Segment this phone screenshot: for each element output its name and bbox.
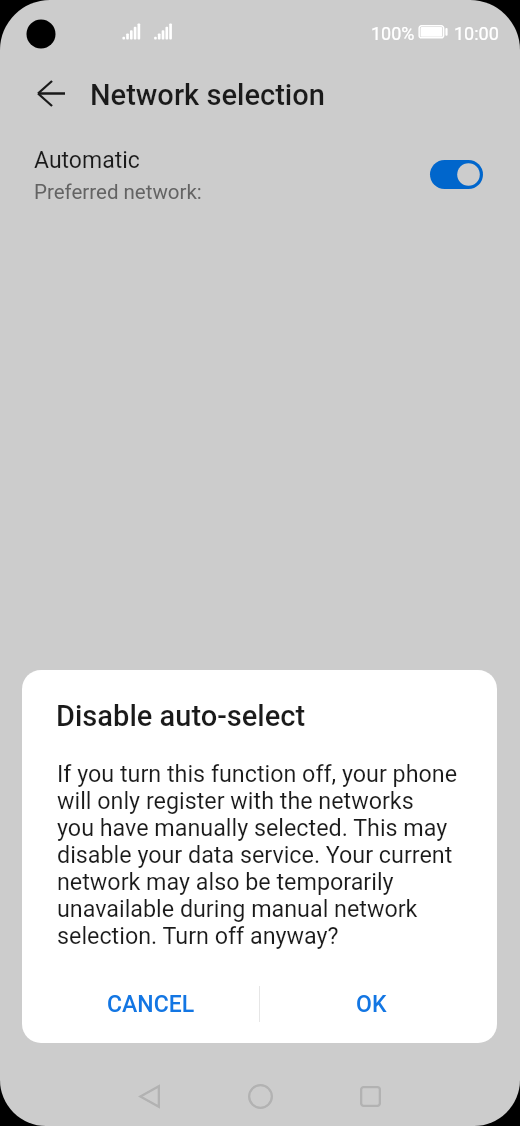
staticText: Automatic [34,147,140,174]
button[interactable]: OK [253,973,490,1035]
staticText: If you turn this function off, your phon… [57,761,458,950]
button[interactable]: Recent apps [342,1068,398,1124]
button[interactable]: Automatic, on [430,160,483,189]
button[interactable]: Back [121,1068,177,1124]
staticText: Preferred network: [34,180,202,204]
button[interactable]: Automatic [0,136,520,220]
staticText: Disable auto-select [56,699,306,733]
staticText: OK [356,991,387,1018]
button[interactable]: Navigate up [27,69,75,117]
button[interactable]: Home [232,1068,288,1124]
staticText: Network selection [90,78,325,112]
staticText: 100% [371,23,415,44]
staticText: CANCEL [107,991,195,1018]
button[interactable]: CANCEL [32,973,269,1035]
staticText: 10:00 [454,23,499,44]
